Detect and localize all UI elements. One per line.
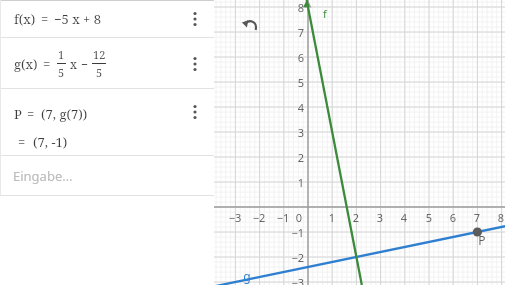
staticText: 2 — [347, 210, 365, 225]
staticText: P — [473, 232, 491, 248]
staticText: −3 — [226, 210, 244, 225]
staticText: 5 — [420, 210, 438, 225]
staticText: 3 — [371, 210, 389, 225]
staticText: (7, -1) — [33, 133, 68, 151]
staticText: = — [18, 133, 26, 151]
staticText: = — [27, 105, 35, 123]
staticText: = — [41, 10, 49, 28]
staticText: 6 — [444, 210, 462, 225]
staticText: Eingabe… — [13, 167, 73, 185]
staticText: −5 x + 8 — [54, 10, 101, 28]
button[interactable]: More options — [182, 99, 208, 125]
staticText: −3 — [286, 275, 304, 285]
staticText: 6 — [286, 50, 304, 65]
staticText: 4 — [286, 100, 304, 115]
button[interactable]: f(x) — [0, 1, 214, 37]
staticText: x — [70, 56, 77, 72]
staticText: 5 — [96, 65, 103, 80]
staticText: 3 — [286, 125, 304, 140]
button[interactable]: More options — [182, 6, 208, 32]
staticText: 1 — [323, 210, 341, 225]
staticText: f(x) — [14, 10, 36, 28]
staticText: 12 — [93, 47, 106, 62]
staticText: −2 — [250, 210, 268, 225]
staticText: f — [316, 6, 334, 21]
button[interactable]: g(x) — [0, 38, 214, 88]
staticText: −2 — [286, 250, 304, 265]
button[interactable]: Undo — [236, 12, 264, 40]
staticText: P — [14, 105, 22, 123]
staticText: g — [238, 268, 256, 284]
staticText: 8 — [286, 0, 304, 15]
staticText: (7, g(7)) — [41, 105, 88, 123]
staticText: 7 — [286, 25, 304, 40]
staticText: 5 — [286, 75, 304, 90]
button[interactable]: More options — [182, 51, 208, 77]
staticText: = — [43, 55, 51, 73]
staticText: g(x) — [14, 55, 38, 73]
staticText: 0 — [290, 210, 308, 225]
staticText: 4 — [395, 210, 413, 225]
staticText: 2 — [286, 150, 304, 165]
button[interactable]: P — [0, 89, 214, 155]
staticText: 1 — [286, 175, 304, 190]
staticText: − — [81, 56, 88, 72]
staticText: 8 — [492, 210, 505, 225]
staticText: 5 — [58, 65, 65, 80]
staticText: −1 — [274, 210, 292, 225]
staticText: −1 — [286, 225, 304, 240]
button[interactable]: Eingabe… — [0, 156, 214, 195]
staticText: 7 — [468, 210, 486, 225]
staticText: 1 — [58, 47, 65, 62]
